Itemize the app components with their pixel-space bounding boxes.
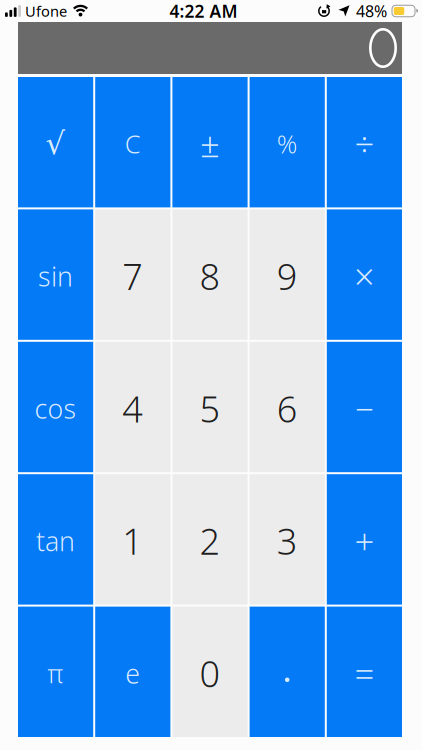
button[interactable]: π — [18, 607, 93, 737]
staticText: tan — [36, 523, 75, 559]
button[interactable]: 8 — [172, 209, 248, 340]
button[interactable]: + — [327, 474, 402, 605]
button[interactable]: 7 — [95, 209, 170, 340]
staticText: 1 — [122, 517, 143, 565]
staticText: 9 — [277, 252, 298, 300]
staticText: Ufone — [25, 1, 67, 21]
staticText: 48% — [356, 0, 387, 22]
button[interactable]: ± — [172, 77, 248, 207]
button[interactable]: √ — [18, 77, 93, 207]
button[interactable]: = — [327, 607, 402, 737]
button[interactable]: 3 — [250, 474, 325, 605]
button[interactable]: cos — [18, 342, 93, 472]
staticText: 0 — [199, 649, 220, 697]
staticText: 8 — [199, 252, 220, 300]
button[interactable]: × — [327, 209, 402, 340]
staticText: C — [125, 127, 141, 160]
staticText: √ — [46, 126, 66, 161]
button[interactable]: 9 — [250, 209, 325, 340]
staticText: 4:22 AM — [169, 0, 237, 22]
staticText: + — [354, 518, 374, 564]
button[interactable]: C — [95, 77, 170, 207]
staticText: e — [125, 656, 140, 691]
staticText: 7 — [122, 252, 143, 300]
staticText: 4 — [122, 385, 143, 432]
button[interactable]: 2 — [172, 474, 248, 605]
button[interactable]: 5 — [172, 342, 248, 472]
button[interactable]: ÷ — [327, 77, 402, 207]
button[interactable]: − — [327, 342, 402, 472]
staticText: sin — [38, 258, 73, 294]
staticText: ÷ — [354, 121, 374, 167]
staticText: 6 — [277, 385, 298, 432]
button[interactable]: sin — [18, 209, 93, 340]
staticText: cos — [35, 391, 77, 426]
staticText: π — [48, 656, 64, 690]
staticText: % — [277, 127, 298, 160]
button[interactable]: 6 — [250, 342, 325, 472]
button[interactable]: % — [250, 77, 325, 207]
button[interactable]: 1 — [95, 474, 170, 605]
button[interactable]: Decimal point — [250, 607, 325, 737]
staticText: − — [355, 386, 374, 431]
staticText: 2 — [199, 517, 220, 565]
staticText: ± — [200, 121, 220, 167]
button[interactable]: 0 — [172, 607, 248, 737]
button[interactable]: e — [95, 607, 170, 737]
staticText: 5 — [199, 385, 220, 432]
staticText: = — [354, 650, 374, 696]
staticText: 3 — [277, 517, 298, 565]
button[interactable]: 4 — [95, 342, 170, 472]
button[interactable]: tan — [18, 474, 93, 605]
staticText: × — [354, 252, 375, 300]
